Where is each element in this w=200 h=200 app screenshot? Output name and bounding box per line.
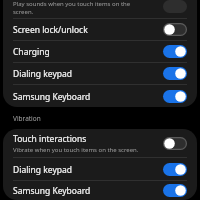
button[interactable]: Screen lock/unlock [3,23,197,36]
button[interactable]: Touch interactions [3,133,197,154]
staticText: Screen lock/unlock [13,24,88,36]
staticText: Samsung Keyboard [13,91,91,103]
button[interactable]: Samsung Keyboard [3,184,197,197]
staticText: Touch interactions [13,133,87,145]
button[interactable]: Charging [3,45,197,58]
staticText: Dialing keypad [13,164,72,176]
staticText: Samsung Keyboard [13,185,91,197]
staticText: Vibration [13,114,41,123]
staticText: Charging [13,46,50,58]
staticText: screen. [13,8,34,16]
button[interactable]: Dialing keypad [3,163,197,176]
staticText: Vibrate when you touch items on the scre… [13,146,139,154]
staticText: Play sounds when you touch items on the [13,0,131,8]
button[interactable]: Dialing keypad [3,67,197,80]
button[interactable]: Play sounds when you touch items on the [3,0,197,18]
button[interactable]: Samsung Keyboard [3,90,197,103]
staticText: Dialing keypad [13,68,72,80]
